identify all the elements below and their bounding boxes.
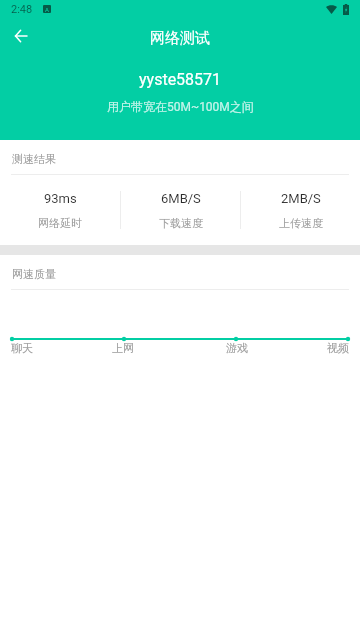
staticText: 网络延时 [38, 216, 82, 230]
staticText: 游戏 [226, 341, 248, 355]
staticText: 聊天 [11, 341, 33, 355]
staticText: 2MB/S [281, 191, 321, 206]
staticText: 2:48 [11, 3, 33, 16]
staticText: 93ms [44, 191, 77, 206]
staticText: 网速质量 [12, 267, 56, 281]
staticText: 6MB/S [161, 191, 201, 206]
staticText: yyste58571 [139, 70, 222, 89]
staticText: 上传速度 [279, 216, 323, 230]
button[interactable]: 6MB/S [121, 191, 240, 230]
staticText: 用户带宽在50M~100M之间 [107, 99, 254, 114]
staticText: A [45, 6, 49, 13]
staticText: 下载速度 [159, 216, 203, 230]
staticText: 视频 [327, 341, 349, 355]
button[interactable]: Back [0, 19, 42, 53]
staticText: 网络测试 [150, 29, 210, 48]
button[interactable]: 2MB/S [241, 191, 360, 230]
staticText: 上网 [112, 341, 134, 355]
staticText: 测速结果 [12, 152, 56, 166]
button[interactable]: 93ms [0, 191, 120, 230]
